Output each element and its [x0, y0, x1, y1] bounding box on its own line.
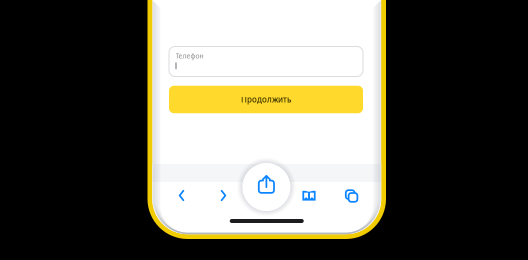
- button[interactable]: Back: [179, 190, 184, 201]
- button[interactable]: Продолжить: [169, 86, 363, 113]
- button[interactable]: Телефон: [169, 46, 363, 76]
- staticText: Телефон: [175, 51, 203, 60]
- staticText: Продолжить: [241, 94, 291, 105]
- button[interactable]: Share: [235, 156, 297, 218]
- button[interactable]: Bookmarks: [302, 190, 316, 201]
- button[interactable]: Forward: [221, 190, 226, 201]
- button[interactable]: Tabs: [344, 189, 356, 200]
